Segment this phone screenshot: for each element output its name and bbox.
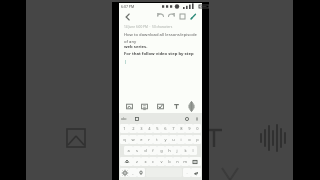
button[interactable]: Clipboard xyxy=(134,116,140,122)
staticText: For that follow video step by step xyxy=(124,51,194,57)
button[interactable]: Undo xyxy=(155,11,166,22)
button[interactable]: 9 xyxy=(185,124,193,133)
button[interactable]: u xyxy=(169,135,177,144)
button[interactable]: w xyxy=(129,135,137,144)
staticText: v xyxy=(160,159,163,164)
button[interactable]: h xyxy=(165,146,173,155)
button[interactable]: i xyxy=(177,135,185,144)
button[interactable]: m xyxy=(181,157,189,166)
button[interactable]: , xyxy=(129,168,137,177)
button[interactable]: 2 xyxy=(129,124,137,133)
staticText: 6:07 PM xyxy=(121,4,135,9)
button[interactable]: n xyxy=(173,157,181,166)
button[interactable]: Insert checklist xyxy=(155,101,166,112)
button[interactable]: 7 xyxy=(169,124,177,133)
button[interactable]: Back xyxy=(122,11,133,22)
staticText: m xyxy=(183,159,187,164)
button[interactable]: k xyxy=(181,146,189,155)
button[interactable]: 1 xyxy=(120,124,129,133)
button[interactable]: l xyxy=(189,146,197,155)
button[interactable]: Voice recording xyxy=(186,101,197,112)
button[interactable]: Sticker xyxy=(184,116,190,122)
staticText: web series. xyxy=(124,44,148,50)
staticText: 6 xyxy=(164,126,167,131)
staticText: y xyxy=(164,137,167,142)
button[interactable]: o xyxy=(185,135,193,144)
staticText: l xyxy=(192,148,194,153)
button[interactable]: Edit xyxy=(188,11,199,22)
button[interactable]: Backspace xyxy=(189,157,201,166)
button[interactable]: 4 xyxy=(145,124,153,133)
staticText: h xyxy=(168,148,171,153)
button[interactable]: 3 xyxy=(137,124,145,133)
button[interactable]: Voice input xyxy=(137,168,145,177)
button[interactable]: Keyboard settings xyxy=(194,116,200,122)
button[interactable]: p xyxy=(193,135,201,144)
button[interactable]: Insert image xyxy=(124,101,135,112)
button[interactable]: y xyxy=(161,135,169,144)
staticText: a xyxy=(127,148,130,153)
staticText: 2 xyxy=(132,126,135,131)
button[interactable]: c xyxy=(149,157,157,166)
button[interactable]: z xyxy=(133,157,141,166)
staticText: How to download all lessons/episode of a… xyxy=(124,32,198,44)
staticText: p xyxy=(196,137,199,142)
button[interactable]: Symbols xyxy=(120,168,129,177)
button[interactable]: j xyxy=(173,146,181,155)
staticText: s xyxy=(136,148,138,153)
staticText: n xyxy=(176,159,179,164)
button[interactable]: a xyxy=(124,146,133,155)
button[interactable]: r xyxy=(145,135,153,144)
staticText: e xyxy=(140,137,143,142)
staticText: 14 June 6:00 PM · 50 characters xyxy=(124,25,173,29)
staticText: c xyxy=(152,159,154,164)
button[interactable]: Shift xyxy=(120,157,133,166)
button[interactable]: Insert list xyxy=(139,101,150,112)
staticText: o xyxy=(188,137,191,142)
staticText: f xyxy=(152,148,154,153)
staticText: 0 xyxy=(196,126,199,131)
staticText: 1 xyxy=(123,126,126,131)
staticText: 7 xyxy=(172,126,175,131)
button[interactable]: 5 xyxy=(153,124,161,133)
staticText: d xyxy=(144,148,147,153)
button[interactable]: abc xyxy=(121,116,127,121)
button[interactable]: 8 xyxy=(177,124,185,133)
staticText: b xyxy=(168,159,171,164)
staticText: i xyxy=(180,137,182,142)
staticText: abc xyxy=(121,116,127,121)
staticText: g xyxy=(160,148,163,153)
staticText: 9 xyxy=(188,126,191,131)
button[interactable]: Pin note xyxy=(177,11,188,22)
staticText: , xyxy=(132,170,134,175)
button[interactable]: q xyxy=(120,135,129,144)
button[interactable]: f xyxy=(149,146,157,155)
staticText: z xyxy=(136,159,138,164)
button[interactable]: Text style xyxy=(171,101,182,112)
staticText: x xyxy=(144,159,147,164)
button[interactable]: v xyxy=(157,157,165,166)
button[interactable]: x xyxy=(141,157,149,166)
button[interactable]: 0 xyxy=(193,124,201,133)
button[interactable]: d xyxy=(141,146,149,155)
button[interactable]: Redo xyxy=(166,11,177,22)
button[interactable]: t xyxy=(153,135,161,144)
staticText: 8 xyxy=(180,126,183,131)
staticText: k xyxy=(184,148,187,153)
staticText: | xyxy=(124,59,127,65)
staticText: q xyxy=(123,137,126,142)
button[interactable]: g xyxy=(157,146,165,155)
button[interactable]: s xyxy=(133,146,141,155)
staticText: 4 xyxy=(148,126,151,131)
staticText: r xyxy=(148,137,150,142)
staticText: . xyxy=(186,170,188,175)
button[interactable]: b xyxy=(165,157,173,166)
staticText: u xyxy=(172,137,175,142)
staticText: 3 xyxy=(140,126,143,131)
staticText: w xyxy=(131,137,135,142)
button[interactable]: e xyxy=(137,135,145,144)
button[interactable]: 6 xyxy=(161,124,169,133)
button[interactable]: Enter xyxy=(191,168,201,177)
